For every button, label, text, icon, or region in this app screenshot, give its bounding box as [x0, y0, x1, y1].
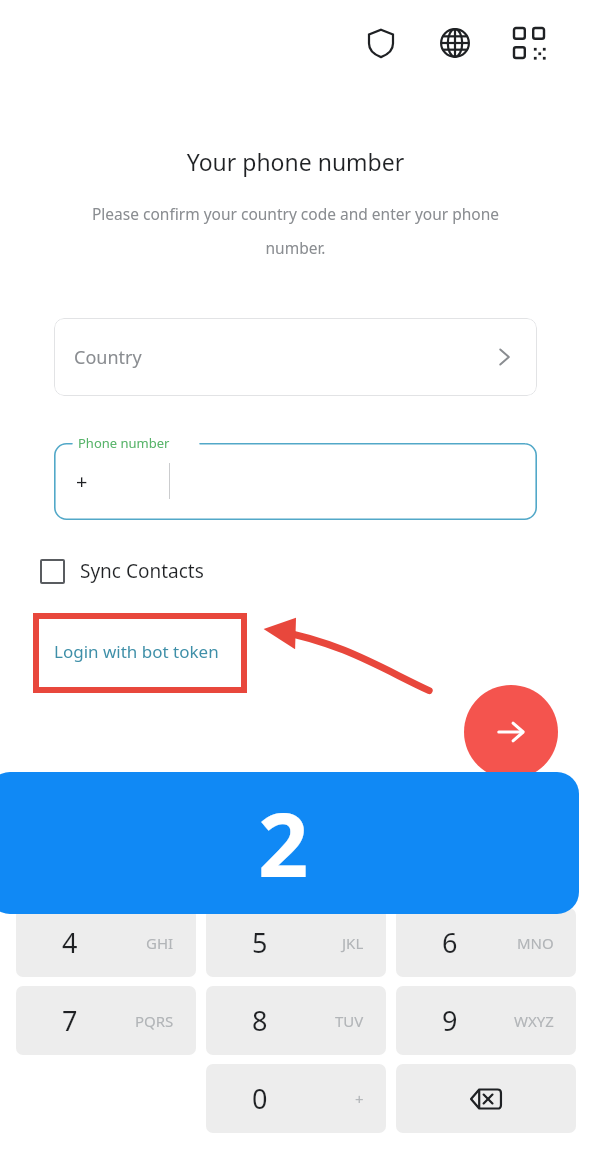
staticText: Your phone number — [0, 146, 591, 177]
staticText: 9 — [442, 1002, 458, 1039]
button[interactable]: Scan QR code — [506, 20, 552, 66]
staticText: 2 — [252, 848, 268, 885]
button[interactable]: 9 — [396, 986, 576, 1055]
button[interactable]: Sync Contacts — [40, 548, 204, 594]
button[interactable]: 8 — [206, 986, 386, 1055]
button[interactable]: 5 — [206, 908, 386, 977]
staticText: JKL — [342, 933, 364, 953]
button[interactable]: 4 — [16, 908, 196, 977]
button[interactable]: Country — [54, 318, 537, 396]
button[interactable]: 7 — [16, 986, 196, 1055]
staticText: Login with bot token — [54, 640, 219, 663]
staticText: + — [355, 1089, 364, 1109]
staticText: 6 — [442, 924, 458, 961]
staticText: TUV — [335, 1011, 364, 1031]
button[interactable]: Login with bot token — [54, 630, 219, 672]
staticText: Country — [74, 345, 142, 370]
staticText: WXYZ — [514, 1011, 554, 1031]
button[interactable]: 6 — [396, 908, 576, 977]
staticText: 4 — [62, 924, 78, 961]
button[interactable]: Backspace — [396, 1064, 576, 1133]
staticText: + — [76, 468, 88, 495]
button[interactable]: Next — [464, 685, 558, 779]
staticText: 7 — [62, 1002, 78, 1039]
staticText: Phone number — [78, 434, 170, 452]
button[interactable]: 2 — [206, 832, 386, 901]
staticText: 5 — [252, 924, 268, 961]
staticText: GHI — [146, 933, 174, 953]
staticText: 2 — [258, 783, 309, 903]
staticText: 8 — [252, 1002, 268, 1039]
button[interactable]: 0 — [206, 1064, 386, 1133]
staticText: PQRS — [135, 1011, 174, 1031]
staticText: Sync Contacts — [80, 558, 204, 584]
staticText: MNO — [517, 933, 554, 953]
staticText: Please confirm your country code and ent… — [62, 203, 529, 259]
button[interactable]: Language — [432, 20, 478, 66]
staticText: 0 — [252, 1080, 268, 1117]
button[interactable]: Privacy — [358, 20, 404, 66]
